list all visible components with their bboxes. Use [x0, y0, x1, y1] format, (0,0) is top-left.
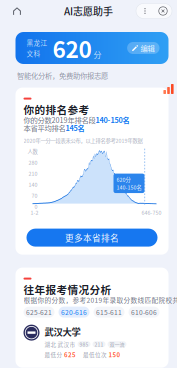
button[interactable]: Home — [6, 1, 28, 21]
button[interactable]: More — [136, 4, 154, 18]
button[interactable]: 更多本省排名 — [26, 229, 157, 247]
button[interactable]: 625-621 — [23, 307, 54, 318]
staticText: 分 — [93, 49, 101, 60]
staticText: 615-611 — [96, 307, 122, 317]
staticText: 625-621 — [26, 307, 52, 317]
staticText: 280 — [28, 159, 37, 166]
button[interactable]: 620-616 — [58, 307, 89, 318]
staticText: 2020年一分一段表未公布，以上排名参考2019年数据 — [23, 137, 142, 144]
staticText: 本省平均排名 — [23, 123, 65, 133]
staticText: 0 — [34, 203, 37, 210]
staticText: 文科 — [26, 48, 40, 58]
staticText: 145名 — [65, 123, 84, 133]
button[interactable]: 武汉大学 — [23, 325, 168, 359]
staticText: 150 — [108, 350, 120, 359]
staticText: 625 — [64, 350, 76, 359]
staticText: 610-606 — [131, 307, 157, 317]
button[interactable]: 610-606 — [128, 307, 159, 318]
staticText: 140-150名 — [116, 183, 141, 191]
staticText: 你的分数2019年排名段 — [23, 115, 95, 125]
staticText: 往年报考情况分析 — [23, 282, 111, 297]
staticText: 双一流 — [109, 340, 124, 348]
staticText: 最低分 — [44, 350, 62, 359]
button[interactable]: Close — [154, 4, 172, 18]
staticText: 湖北 武汉市 — [44, 340, 75, 348]
staticText: 黑龙江 — [26, 38, 47, 47]
button[interactable]: 编辑 — [127, 42, 159, 54]
staticText: 70 — [31, 192, 37, 199]
staticText: 210 — [28, 170, 37, 177]
staticText: 1-2 — [30, 209, 38, 216]
staticText: 根据你的分数，参考2019年录取分数线匹配院校共 — [23, 295, 177, 305]
staticText: 智能化分析，免费助你报志愿 — [17, 70, 108, 81]
staticText: 武汉大学 — [44, 325, 80, 338]
staticText: 140 — [28, 181, 37, 188]
staticText: 人数 — [27, 148, 37, 155]
staticText: 620-616 — [61, 307, 87, 317]
staticText: 985 — [79, 340, 88, 348]
button[interactable]: 615-611 — [93, 307, 124, 318]
staticText: 最低位次 — [83, 350, 107, 359]
staticText: 646-750 — [141, 209, 161, 216]
staticText: 编辑 — [140, 43, 154, 53]
staticText: 更多本省排名 — [65, 231, 119, 244]
staticText: 140-150名 — [95, 115, 129, 125]
staticText: 你的排名参考 — [23, 102, 89, 117]
staticText: 620 — [52, 32, 91, 64]
staticText: 211 — [94, 340, 103, 348]
staticText: AI志愿助手 — [64, 4, 113, 18]
staticText: 620分 — [116, 176, 130, 183]
